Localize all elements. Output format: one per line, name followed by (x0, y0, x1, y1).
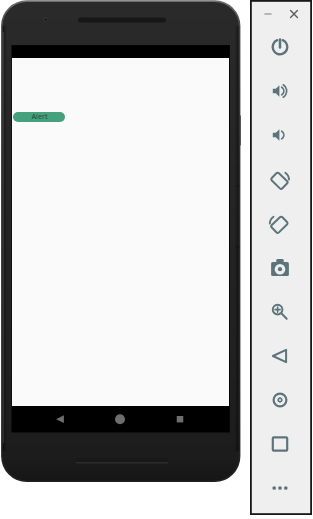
button[interactable]: Volume up (264, 75, 296, 107)
button[interactable]: Home (264, 384, 296, 416)
button[interactable]: Recent apps (161, 406, 199, 432)
button[interactable]: Alert (13, 112, 65, 122)
button[interactable]: Power (264, 31, 296, 63)
button[interactable]: Zoom (264, 296, 296, 328)
button[interactable]: Take screenshot (264, 252, 296, 284)
button[interactable]: Back (41, 406, 79, 432)
staticText: Alert (31, 112, 48, 122)
button[interactable]: Rotate right (264, 208, 296, 240)
button[interactable]: More (264, 472, 296, 504)
button[interactable]: Close (285, 5, 303, 23)
button[interactable]: Rotate left (264, 164, 296, 196)
button[interactable]: Minimize (259, 5, 277, 23)
button[interactable]: Back (264, 340, 296, 372)
button[interactable]: Overview (264, 428, 296, 460)
button[interactable]: Home (101, 406, 139, 432)
button[interactable]: Volume down (264, 119, 296, 151)
